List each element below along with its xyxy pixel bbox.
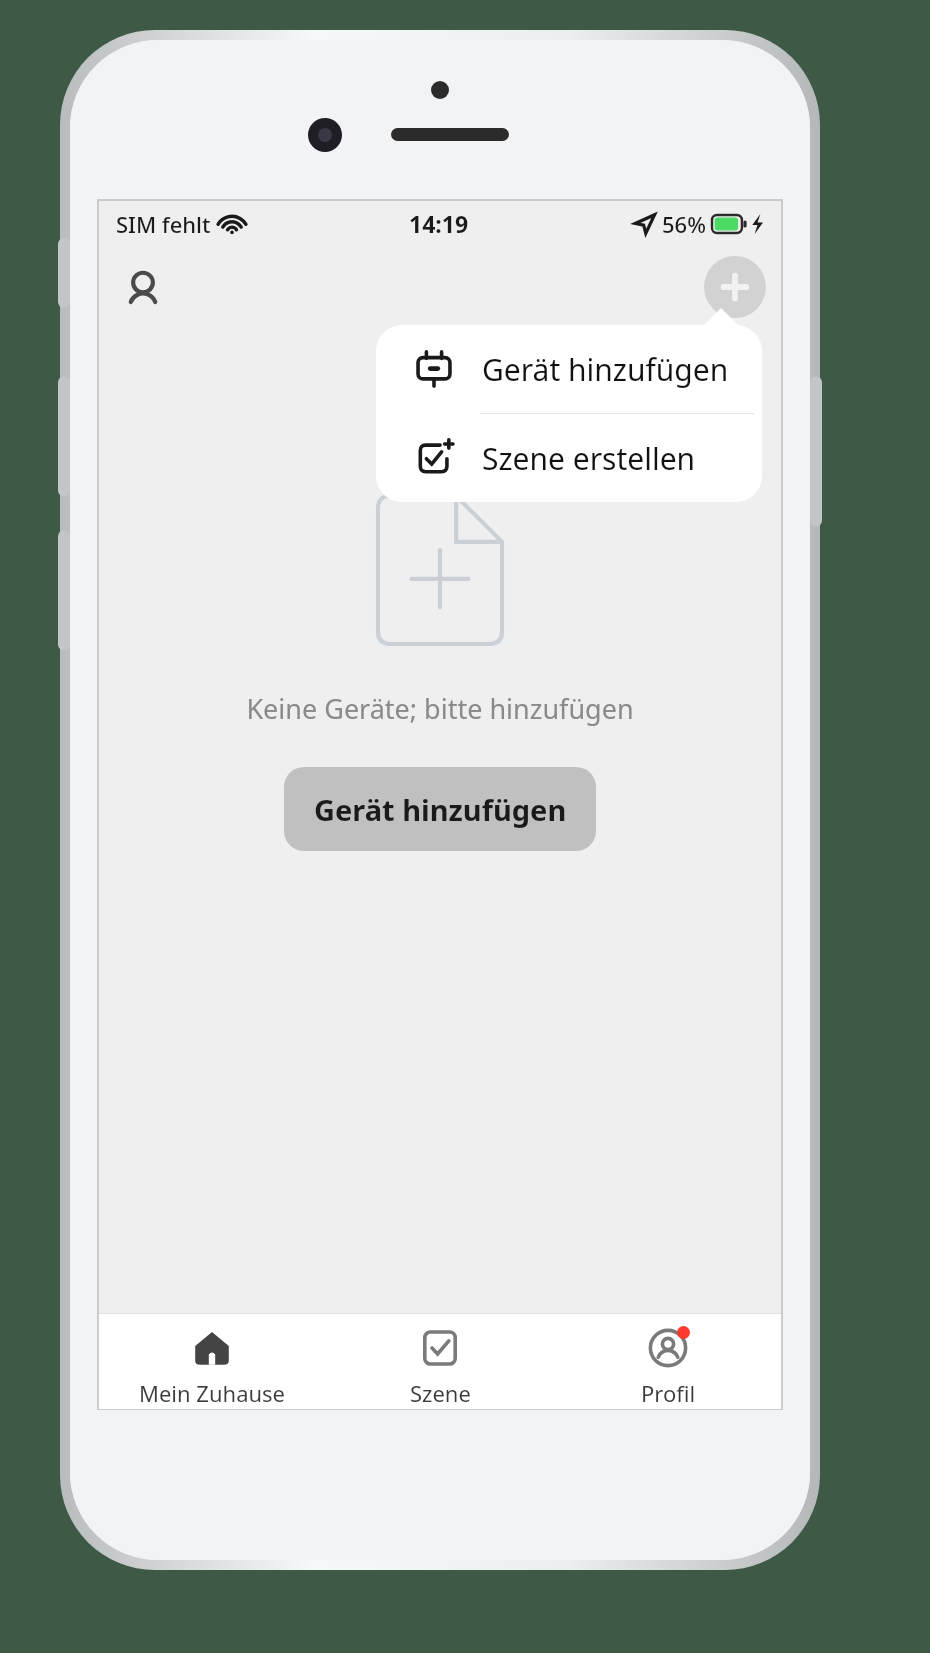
staticText: Szene erstellen <box>482 438 696 479</box>
button[interactable]: Szene erstellen <box>376 414 762 502</box>
button[interactable]: Profil <box>554 1314 782 1410</box>
button[interactable]: Gerät hinzufügen <box>376 325 762 413</box>
staticText: Keine Geräte; bitte hinzufügen <box>246 690 634 727</box>
staticText: Mein Zuhause <box>139 1378 286 1408</box>
staticText: Profil <box>641 1378 696 1408</box>
staticText: Gerät hinzufügen <box>314 790 567 829</box>
button[interactable]: Profil <box>112 260 174 322</box>
button[interactable]: Gerät hinzufügen <box>284 767 596 851</box>
staticText: Gerät hinzufügen <box>482 349 729 390</box>
staticText: 14:19 <box>409 208 469 239</box>
staticText: 56% <box>662 209 706 239</box>
staticText: SIM fehlt <box>116 209 211 239</box>
button[interactable]: Szene <box>326 1314 554 1410</box>
button[interactable]: Hinzufügen <box>704 256 766 318</box>
button[interactable]: Mein Zuhause <box>98 1314 326 1410</box>
staticText: Szene <box>410 1378 471 1408</box>
